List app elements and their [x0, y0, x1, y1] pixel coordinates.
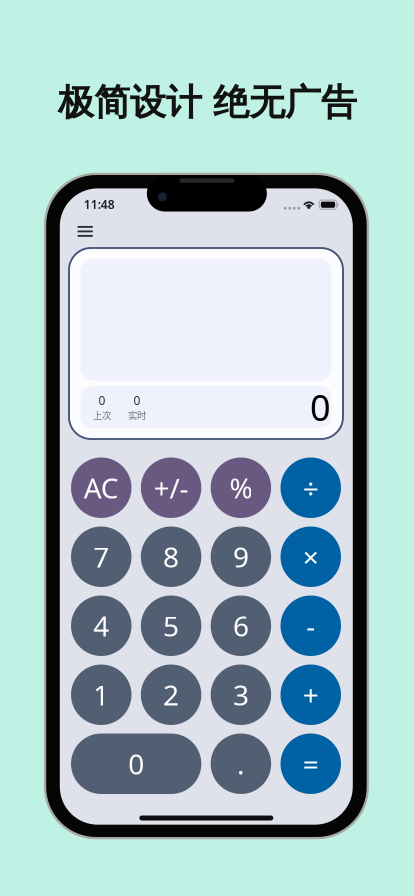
button[interactable]: 7 — [71, 526, 131, 587]
staticText: AC — [84, 469, 119, 506]
button[interactable]: + — [280, 664, 341, 725]
button[interactable]: . — [211, 733, 271, 794]
staticText: = — [303, 745, 319, 782]
staticText: 2 — [163, 676, 179, 713]
button[interactable]: 8 — [141, 526, 201, 587]
button[interactable]: 0 — [71, 733, 201, 794]
button[interactable]: AC — [71, 457, 131, 518]
button[interactable]: +/- — [141, 457, 201, 518]
staticText: 9 — [233, 538, 249, 575]
button[interactable]: = — [280, 733, 341, 794]
staticText: 极简设计 绝无广告 — [58, 80, 357, 125]
staticText: 0 — [133, 392, 140, 408]
staticText: 8 — [163, 538, 179, 575]
staticText: + — [303, 676, 319, 713]
button[interactable]: - — [280, 595, 341, 656]
staticText: × — [303, 538, 319, 575]
staticText: 0 — [128, 745, 144, 782]
button[interactable]: 5 — [141, 595, 201, 656]
staticText: 4 — [93, 607, 109, 644]
button[interactable]: 1 — [71, 664, 131, 725]
staticText: 上次 — [93, 408, 111, 422]
staticText: . — [237, 745, 245, 782]
staticText: 5 — [163, 607, 179, 644]
staticText: 0 — [310, 383, 331, 431]
staticText: 6 — [233, 607, 249, 644]
staticText: 7 — [93, 538, 109, 575]
staticText: ÷ — [303, 469, 319, 506]
staticText: 0 — [98, 392, 105, 408]
button[interactable]: 3 — [211, 664, 271, 725]
button[interactable]: Menu — [69, 217, 101, 245]
staticText: 3 — [233, 676, 249, 713]
staticText: 1 — [93, 676, 109, 713]
button[interactable]: × — [280, 526, 341, 587]
staticText: 11:48 — [84, 196, 115, 212]
staticText: % — [229, 469, 252, 506]
staticText: 实时 — [128, 408, 146, 422]
button[interactable]: 6 — [211, 595, 271, 656]
staticText: - — [306, 607, 315, 644]
button[interactable]: 4 — [71, 595, 131, 656]
staticText: +/- — [154, 469, 189, 506]
button[interactable]: 2 — [141, 664, 201, 725]
button[interactable]: 9 — [211, 526, 271, 587]
button[interactable]: % — [211, 457, 271, 518]
button[interactable]: ÷ — [280, 457, 341, 518]
